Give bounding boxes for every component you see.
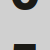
staticText: 05 [9, 0, 41, 50]
